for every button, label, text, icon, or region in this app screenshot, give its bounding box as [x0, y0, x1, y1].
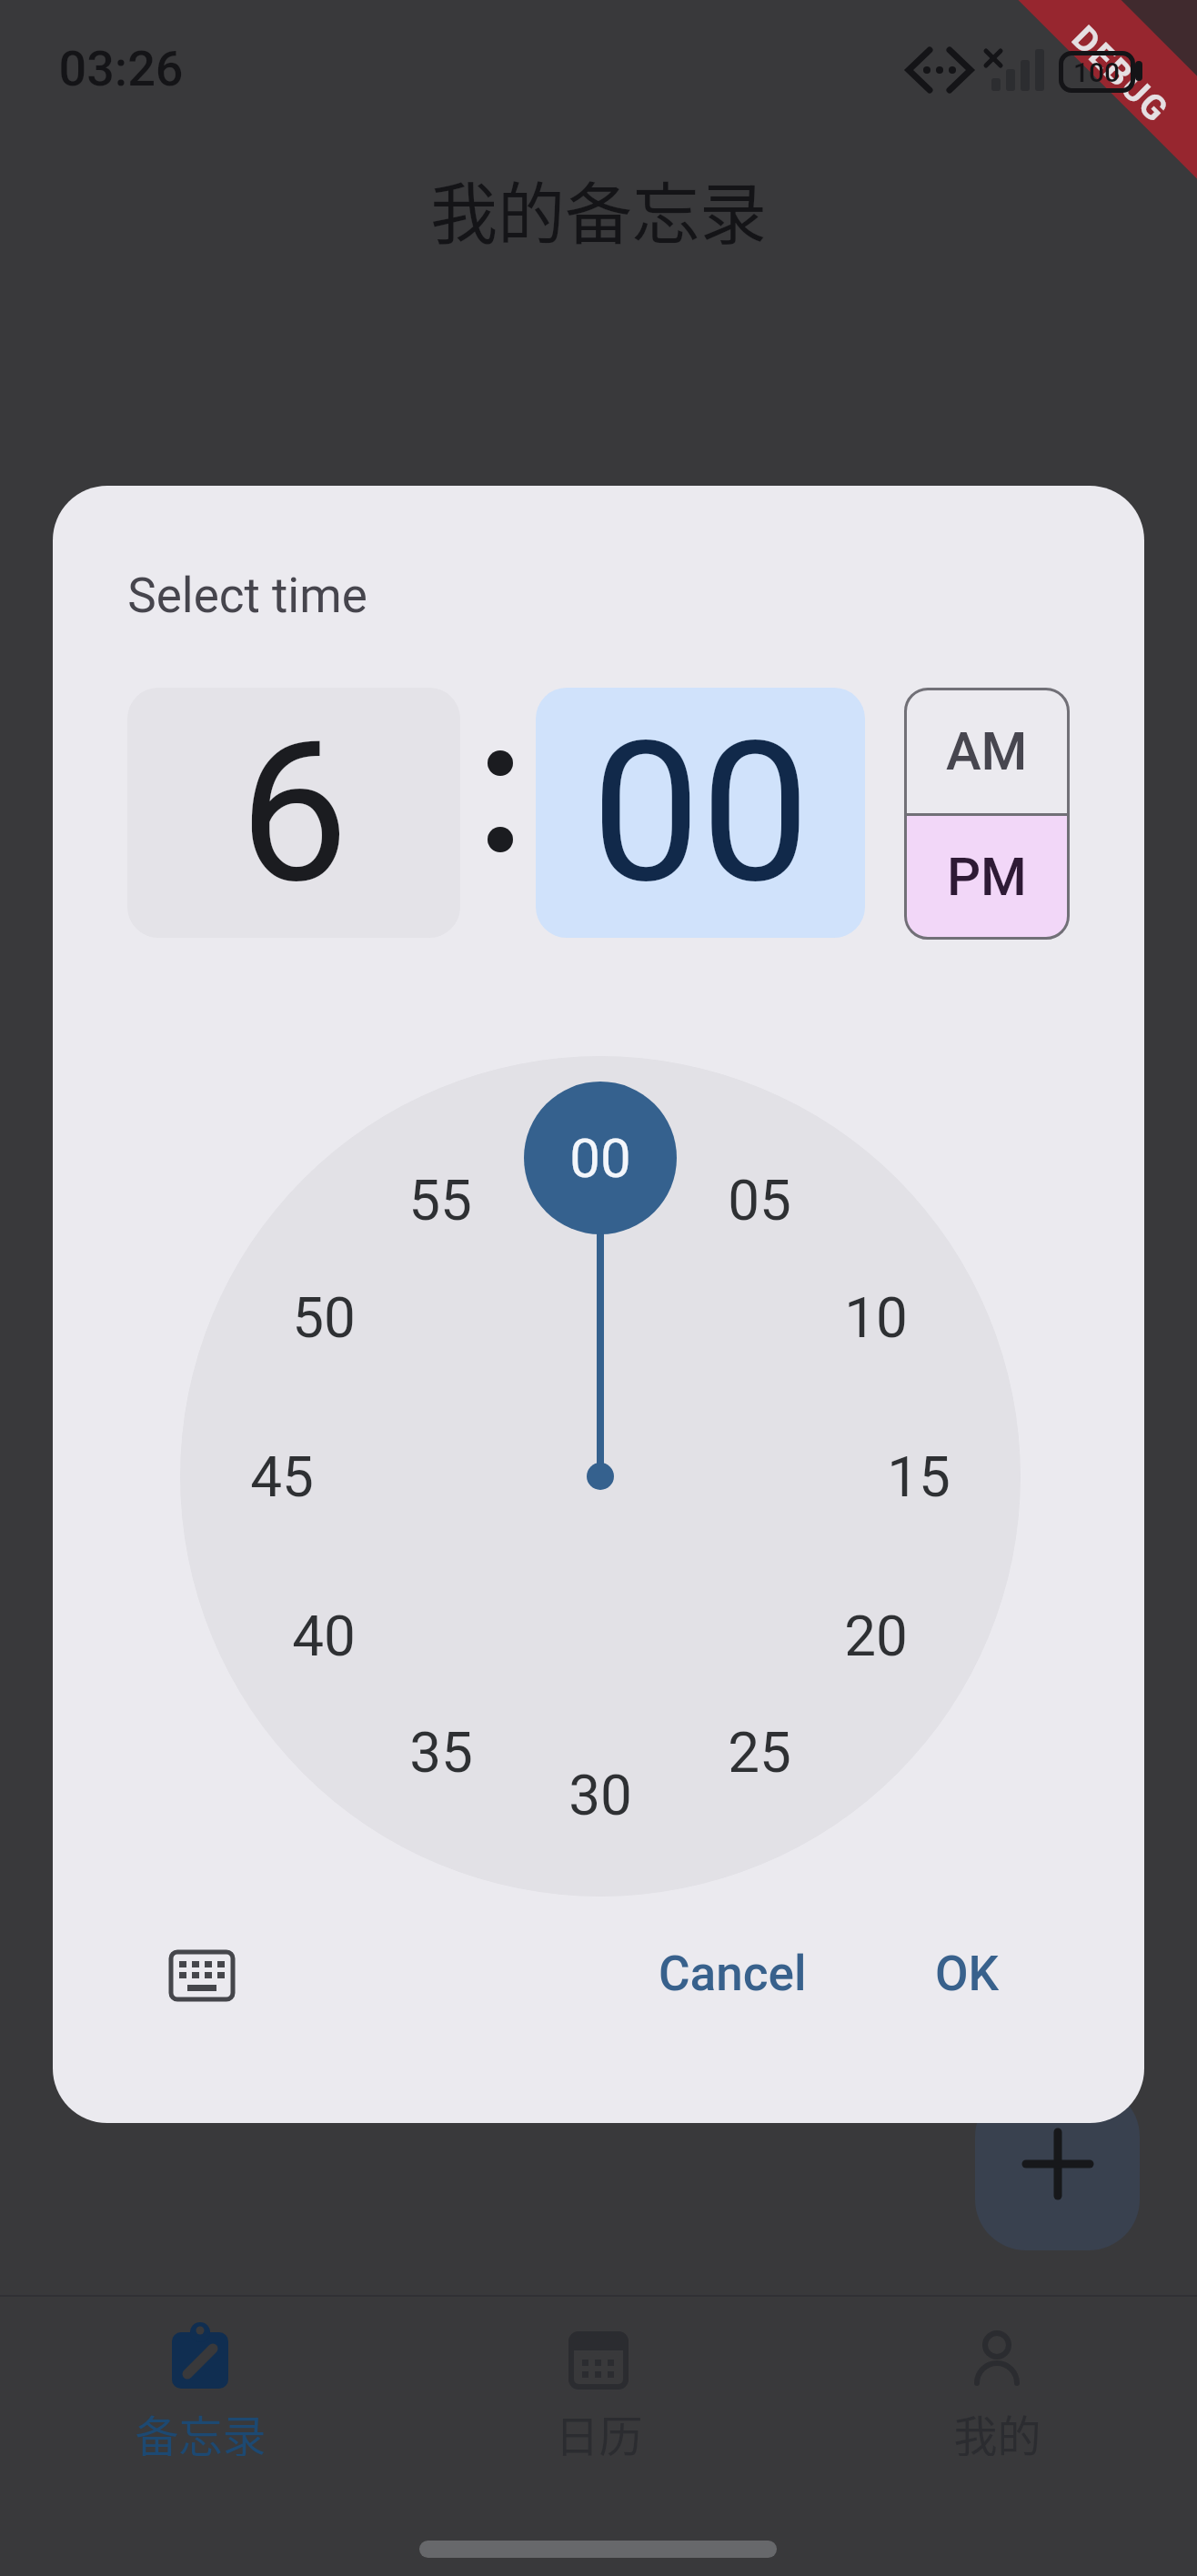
staticText: 我的	[953, 2401, 1041, 2456]
staticText: 15	[887, 1444, 951, 1510]
staticText: 03:26	[58, 40, 184, 97]
button[interactable]: Cancel	[646, 1919, 819, 2028]
staticText: 10	[844, 1284, 908, 1351]
staticText: PM	[947, 846, 1027, 908]
staticText: 40	[292, 1603, 356, 1669]
staticText: 100	[1073, 56, 1121, 88]
staticText: Select time	[127, 568, 367, 624]
button[interactable]: 备忘录	[100, 2310, 300, 2474]
button[interactable]	[975, 2086, 1140, 2250]
staticText: 05	[728, 1167, 791, 1233]
staticText: 6	[239, 699, 349, 927]
staticText: Cancel	[659, 1946, 807, 2002]
staticText: 我的备忘录	[430, 160, 767, 251]
button[interactable]: AM	[904, 688, 1070, 814]
staticText: OK	[935, 1946, 1000, 2002]
staticText: 35	[409, 1719, 473, 1786]
staticText: 00	[591, 699, 810, 927]
staticText: 30	[568, 1762, 632, 1828]
button[interactable]: 我的	[897, 2310, 1097, 2474]
button[interactable]: 日历	[498, 2310, 699, 2474]
staticText: 00	[569, 1126, 631, 1190]
staticText: AM	[946, 720, 1028, 782]
staticText: DEBUG	[1063, 18, 1177, 132]
staticText: 45	[250, 1444, 314, 1510]
staticText: 55	[408, 1167, 472, 1233]
button[interactable]: OK	[890, 1919, 1044, 2028]
staticText: 备忘录	[135, 2401, 267, 2456]
button[interactable]: 00	[536, 688, 865, 938]
button[interactable]: PM	[904, 814, 1070, 940]
staticText: 25	[728, 1719, 791, 1786]
button[interactable]: 6	[127, 688, 460, 938]
staticText: 20	[844, 1603, 908, 1669]
button[interactable]	[156, 1930, 247, 2021]
staticText: 日历	[555, 2401, 643, 2456]
staticText: 50	[292, 1284, 356, 1351]
